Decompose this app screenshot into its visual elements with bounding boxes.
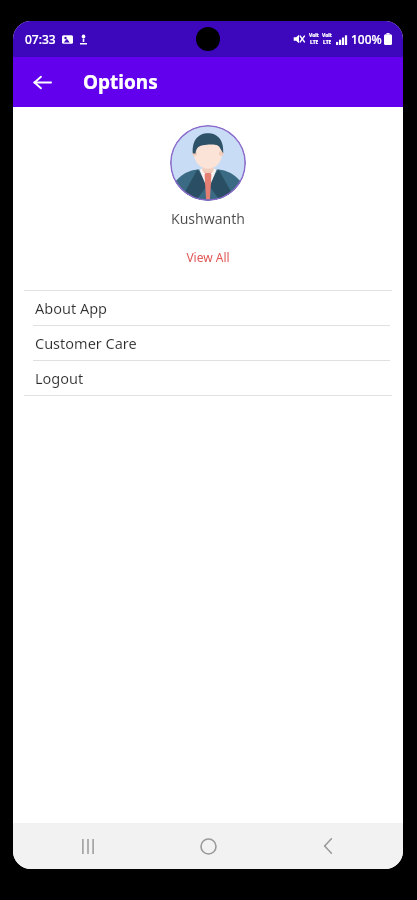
button[interactable]: View All <box>178 247 238 267</box>
button[interactable]: Back <box>25 65 59 99</box>
staticText: About App <box>35 298 108 318</box>
staticText: 100% <box>351 31 382 47</box>
button[interactable]: Recent apps <box>43 823 133 869</box>
staticText: Volt <box>309 32 319 39</box>
staticText: Kushwanth <box>171 209 245 228</box>
staticText: View All <box>186 249 230 265</box>
staticText: LTE <box>323 39 332 46</box>
button[interactable]: Logout <box>24 361 392 395</box>
button[interactable]: Home <box>163 823 253 869</box>
staticText: Customer Care <box>35 333 137 353</box>
button[interactable]: Back <box>283 823 373 869</box>
button[interactable]: Profile photo <box>170 125 246 201</box>
staticText: 07:33 <box>25 31 56 47</box>
staticText: Logout <box>35 368 84 388</box>
staticText: Volt <box>322 32 332 39</box>
staticText: LTE <box>310 39 319 46</box>
button[interactable]: Customer Care <box>24 326 392 360</box>
staticText: Options <box>83 69 158 95</box>
button[interactable]: About App <box>24 291 392 325</box>
